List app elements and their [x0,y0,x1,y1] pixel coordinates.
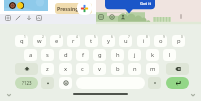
button[interactable]: More [188,90,197,99]
staticText: g [98,51,102,59]
staticText: c [81,65,84,73]
button[interactable]: Backspace [166,63,189,75]
staticText: n [133,65,137,73]
button[interactable]: g [93,49,106,61]
button[interactable]: ?123 [15,77,38,89]
button[interactable]: Emoji [59,77,72,89]
button[interactable]: t [85,35,98,47]
button[interactable]: l [163,49,176,61]
staticText: w [37,37,42,45]
staticText: a [29,51,33,59]
staticText: s [46,51,49,59]
staticText: 5 [94,35,96,39]
button[interactable]: e [50,35,63,47]
staticText: i [143,37,145,45]
button[interactable]: v [93,63,106,75]
button[interactable]: Crop [4,14,11,21]
button[interactable]: Map action [97,13,104,20]
button[interactable]: Add [77,1,92,15]
button[interactable]: r [67,35,80,47]
staticText: 4 [76,35,78,39]
button[interactable]: u [119,35,132,47]
staticText: y [107,37,110,45]
button[interactable]: z [41,63,54,75]
button[interactable]: Period [148,77,161,89]
staticText: 8 [146,35,148,39]
button[interactable]: Enter [166,77,189,89]
staticText: 0 [181,35,183,39]
button[interactable]: Share [35,14,42,21]
button[interactable]: k [146,49,159,61]
staticText: h [116,51,120,59]
button[interactable]: s [41,49,54,61]
button[interactable]: Shift [15,63,38,75]
staticText: l [169,51,171,59]
button[interactable]: Space [76,77,145,89]
button[interactable]: a [24,49,37,61]
button[interactable]: h [111,49,124,61]
button[interactable]: y [102,35,115,47]
button[interactable]: Edit [14,14,21,21]
button[interactable]: Got it [140,1,152,7]
button[interactable]: Pressing for t [55,3,92,14]
button[interactable]: w [33,35,46,47]
staticText: d [64,51,68,59]
staticText: q [20,37,24,45]
staticText: o [159,37,163,45]
button[interactable]: o [154,35,167,47]
button[interactable]: n [128,63,141,75]
button[interactable]: j [128,49,141,61]
staticText: v [98,65,101,73]
button[interactable]: Hide keyboard [4,90,13,99]
staticText: b [116,65,120,73]
staticText: 2 [42,35,44,39]
staticText: z [46,65,49,73]
staticText: u [124,37,128,45]
staticText: p [177,37,181,45]
button[interactable]: c [76,63,89,75]
staticText: 6 [111,35,113,39]
button[interactable]: x [59,63,72,75]
staticText: e [55,37,59,45]
button[interactable]: Map action [108,13,115,20]
staticText: Pressing for t [57,5,91,12]
button[interactable]: b [111,63,124,75]
button[interactable]: Map action [119,13,126,20]
button[interactable]: p [172,35,185,47]
button[interactable]: Comma [41,77,54,89]
staticText: j [134,51,136,59]
button[interactable]: Download [25,14,32,21]
button[interactable]: d [59,49,72,61]
button[interactable]: i [137,35,150,47]
staticText: f [82,51,84,59]
staticText: 9 [163,35,165,39]
button[interactable]: f [76,49,89,61]
staticText: k [151,51,155,59]
staticText: 3 [59,35,61,39]
staticText: r [72,37,75,45]
staticText: 7 [128,35,130,39]
staticText: m [150,65,156,73]
staticText: x [64,65,68,73]
staticText: t [90,37,93,45]
button[interactable]: q [15,35,28,47]
staticText: ?123 [22,80,32,86]
button[interactable]: m [146,63,159,75]
staticText: 1 [24,35,26,39]
